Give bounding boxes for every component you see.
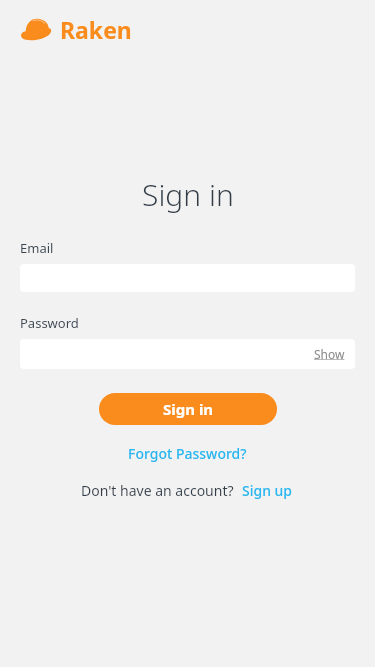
other: Raken logo — [20, 16, 52, 44]
staticText: Don't have an account? — [81, 481, 234, 500]
button[interactable]: Forgot Password? — [122, 441, 253, 466]
staticText: Sign up — [242, 481, 293, 500]
staticText: Show — [314, 346, 345, 362]
staticText: Email — [20, 239, 54, 257]
button[interactable]: Show — [312, 344, 347, 364]
button[interactable]: Show — [20, 339, 355, 369]
button[interactable]: Sign in — [99, 393, 277, 425]
button[interactable]: Sign up — [240, 478, 295, 503]
staticText: Sign in — [163, 399, 214, 419]
button[interactable]: Raken logo — [20, 14, 132, 45]
staticText: Forgot Password? — [128, 444, 247, 463]
staticText: Sign in — [142, 174, 234, 215]
staticText: Password — [20, 314, 79, 332]
staticText: Raken — [60, 14, 132, 45]
